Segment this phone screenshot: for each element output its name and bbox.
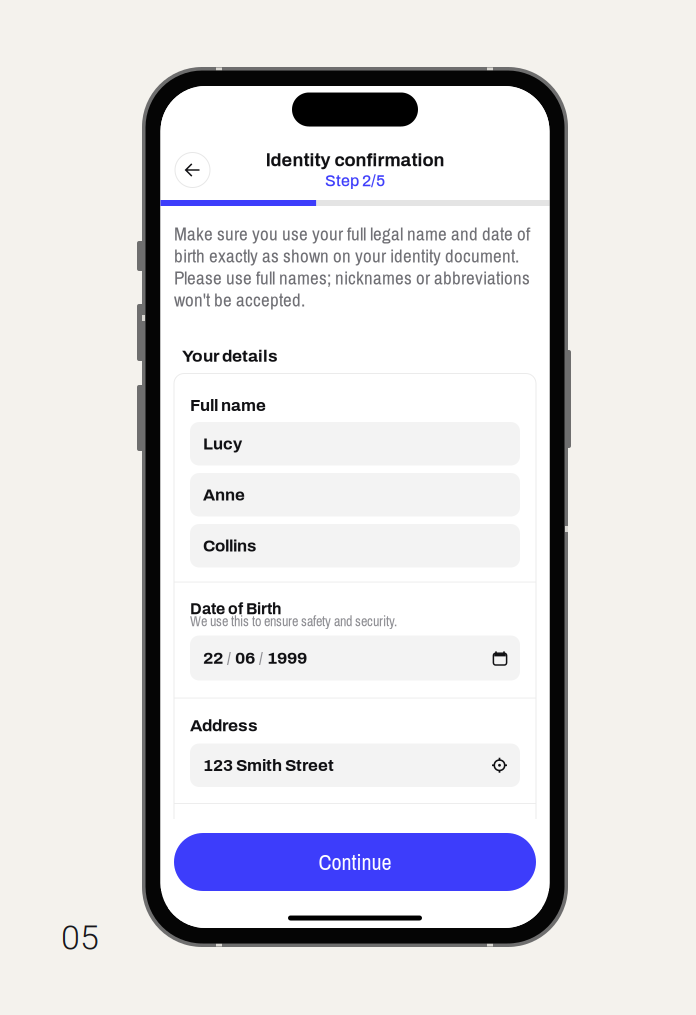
button[interactable]: Anne [190, 473, 520, 516]
staticText: Lucy [203, 435, 242, 453]
staticText: Collins [203, 537, 256, 555]
staticText: 22 [203, 649, 223, 667]
staticText: Make sure you use your full legal name a… [174, 221, 530, 312]
staticText: 1999 [267, 649, 307, 667]
staticText: / [255, 647, 267, 669]
button[interactable]: Back [175, 152, 210, 187]
button[interactable]: 22 [190, 635, 520, 680]
staticText: Date of Birth [190, 600, 281, 617]
button[interactable]: Lucy [190, 422, 520, 465]
staticText: 06 [235, 649, 255, 667]
staticText: 123 Smith Street [203, 756, 334, 774]
staticText: Anne [203, 486, 245, 504]
button[interactable]: Continue [174, 833, 536, 891]
staticText: Continue [318, 847, 391, 877]
staticText: We use this to ensure safety and securit… [190, 611, 397, 630]
button[interactable]: Collins [190, 524, 520, 567]
button[interactable]: 123 Smith Street [190, 743, 520, 787]
staticText: 05 [61, 918, 99, 958]
staticText: Address [190, 716, 258, 735]
staticText: Full name [190, 396, 266, 414]
staticText: Step 2/5 [325, 172, 385, 190]
staticText: / [223, 647, 235, 669]
staticText: Your details [182, 347, 278, 365]
staticText: Identity confirmation [265, 150, 444, 170]
